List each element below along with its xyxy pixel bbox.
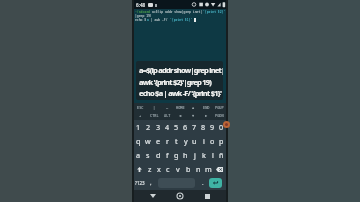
- button[interactable]: [209, 178, 222, 188]
- button[interactable]: 2: [143, 120, 153, 134]
- button[interactable]: n: [193, 162, 203, 176]
- button[interactable]: s: [143, 148, 153, 162]
- staticText: 2: [146, 122, 151, 132]
- button[interactable]: ◀: [174, 111, 187, 120]
- button[interactable]: z: [145, 162, 154, 176]
- staticText: PGDN: [215, 113, 224, 118]
- button[interactable]: 0: [217, 120, 226, 134]
- staticText: ◀: [178, 113, 183, 118]
- staticText: CTRL: [150, 113, 159, 118]
- button[interactable]: 3: [153, 120, 163, 134]
- staticText: ▼: [192, 113, 195, 118]
- button[interactable]: 4: [163, 120, 172, 134]
- button[interactable]: PGUP: [213, 103, 226, 111]
- staticText: |: [153, 105, 156, 110]
- staticText: x: [157, 164, 161, 174]
- staticText: '{print $2}': [203, 10, 226, 14]
- button[interactable]: [223, 121, 230, 128]
- button[interactable]: r: [163, 134, 172, 148]
- staticText: t: [175, 136, 178, 146]
- button[interactable]: y: [181, 134, 190, 148]
- staticText: v: [176, 164, 180, 174]
- button[interactable]: l: [208, 148, 217, 162]
- button[interactable]: i: [199, 134, 208, 148]
- staticText: b: [186, 164, 191, 174]
- button[interactable]: ALT: [161, 111, 174, 120]
- button[interactable]: x: [154, 162, 163, 176]
- staticText: 0: [219, 122, 224, 132]
- button[interactable]: ,: [146, 176, 155, 190]
- button[interactable]: [146, 190, 160, 202]
- button[interactable]: j: [190, 148, 199, 162]
- staticText: END: [203, 105, 210, 110]
- button[interactable]: ñ: [217, 148, 226, 162]
- staticText: q: [136, 136, 141, 146]
- button[interactable]: [133, 162, 145, 176]
- button[interactable]: 7: [190, 120, 199, 134]
- button[interactable]: [173, 190, 187, 202]
- staticText: 3: [156, 122, 161, 132]
- staticText: f: [166, 150, 169, 160]
- staticText: k: [202, 150, 206, 160]
- staticText: n: [196, 164, 201, 174]
- button[interactable]: CTRL: [147, 111, 161, 120]
- button[interactable]: o: [208, 134, 217, 148]
- button[interactable]: ▲: [187, 103, 200, 111]
- staticText: 5: [174, 122, 179, 132]
- staticText: |grep 19): [135, 14, 152, 18]
- button[interactable]: —: [161, 103, 174, 111]
- button[interactable]: d: [153, 148, 163, 162]
- staticText: l: [212, 150, 214, 160]
- button[interactable]: q: [133, 134, 143, 148]
- button[interactable]: f: [163, 148, 172, 162]
- button[interactable]: a: [133, 148, 143, 162]
- button[interactable]: k: [199, 148, 208, 162]
- staticText: 8: [201, 122, 206, 132]
- staticText: ALT: [164, 113, 171, 118]
- button[interactable]: 6: [181, 120, 190, 134]
- button[interactable]: 9: [208, 120, 217, 134]
- button[interactable]: ⇥: [133, 111, 147, 120]
- button[interactable]: [200, 190, 214, 202]
- staticText: 6:48: [136, 2, 146, 8]
- staticText: | awk -F/: [149, 18, 170, 22]
- staticText: a: [136, 150, 141, 160]
- button[interactable]: [213, 162, 226, 176]
- button[interactable]: |: [147, 103, 161, 111]
- button[interactable]: b: [183, 162, 193, 176]
- button[interactable]: h: [181, 148, 190, 162]
- button[interactable]: END: [200, 103, 213, 111]
- button[interactable]: t: [172, 134, 181, 148]
- button[interactable]: u: [190, 134, 199, 148]
- button[interactable]: g: [172, 148, 181, 162]
- button[interactable]: e: [153, 134, 163, 148]
- staticText: g: [174, 150, 179, 160]
- button[interactable]: ▶: [200, 111, 213, 120]
- staticText: s: [146, 150, 150, 160]
- staticText: a=$(ip addr show|grep inet|: [139, 65, 223, 75]
- button[interactable]: .: [198, 176, 207, 190]
- staticText: u: [192, 136, 197, 146]
- button[interactable]: 8: [199, 120, 208, 134]
- button[interactable]: PGDN: [213, 111, 226, 120]
- staticText: c: [166, 164, 170, 174]
- button[interactable]: ▼: [187, 111, 200, 120]
- button[interactable]: ?123: [133, 176, 146, 190]
- button[interactable]: p: [217, 134, 226, 148]
- staticText: '{print $1}': [170, 18, 193, 22]
- button[interactable]: w: [143, 134, 153, 148]
- button[interactable]: ESC: [133, 103, 147, 111]
- staticText: PGUP: [215, 105, 224, 110]
- button[interactable]: HOME: [174, 103, 187, 111]
- button[interactable]: 1: [133, 120, 143, 134]
- staticText: m: [205, 164, 212, 174]
- button[interactable]: v: [173, 162, 183, 176]
- button[interactable]: 5: [172, 120, 181, 134]
- staticText: z: [148, 164, 152, 174]
- staticText: y: [184, 136, 188, 146]
- staticText: awk '{print $2}'|grep 19): [139, 77, 212, 87]
- staticText: 7: [192, 122, 197, 132]
- button[interactable]: m: [203, 162, 213, 176]
- button[interactable]: c: [163, 162, 173, 176]
